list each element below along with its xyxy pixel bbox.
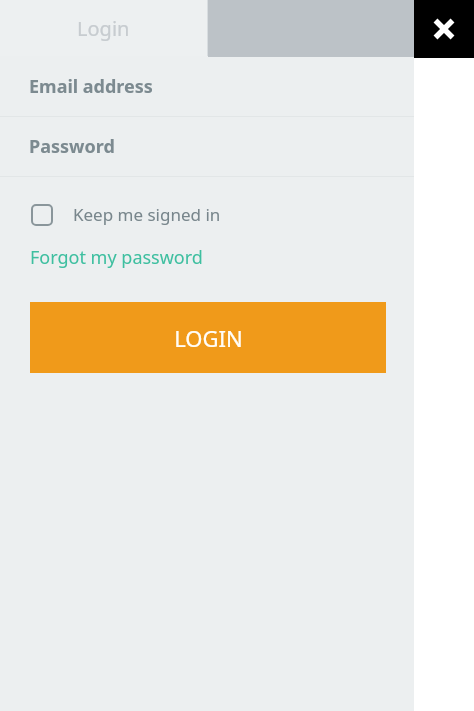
staticText: Password xyxy=(29,134,115,159)
button[interactable]: Login xyxy=(0,0,207,56)
button[interactable]: Forgot my password xyxy=(30,245,203,270)
button[interactable]: Close xyxy=(414,0,474,58)
button[interactable]: Password xyxy=(0,117,414,176)
button[interactable]: Email address xyxy=(0,57,414,116)
staticText: Keep me signed in xyxy=(73,203,221,226)
staticText: Login xyxy=(77,15,130,42)
button[interactable]: LOGIN xyxy=(30,302,386,373)
staticText: Email address xyxy=(29,74,153,99)
button[interactable]: Keep me signed in xyxy=(31,203,221,226)
staticText: LOGIN xyxy=(174,323,243,353)
staticText: Forgot my password xyxy=(30,245,203,270)
